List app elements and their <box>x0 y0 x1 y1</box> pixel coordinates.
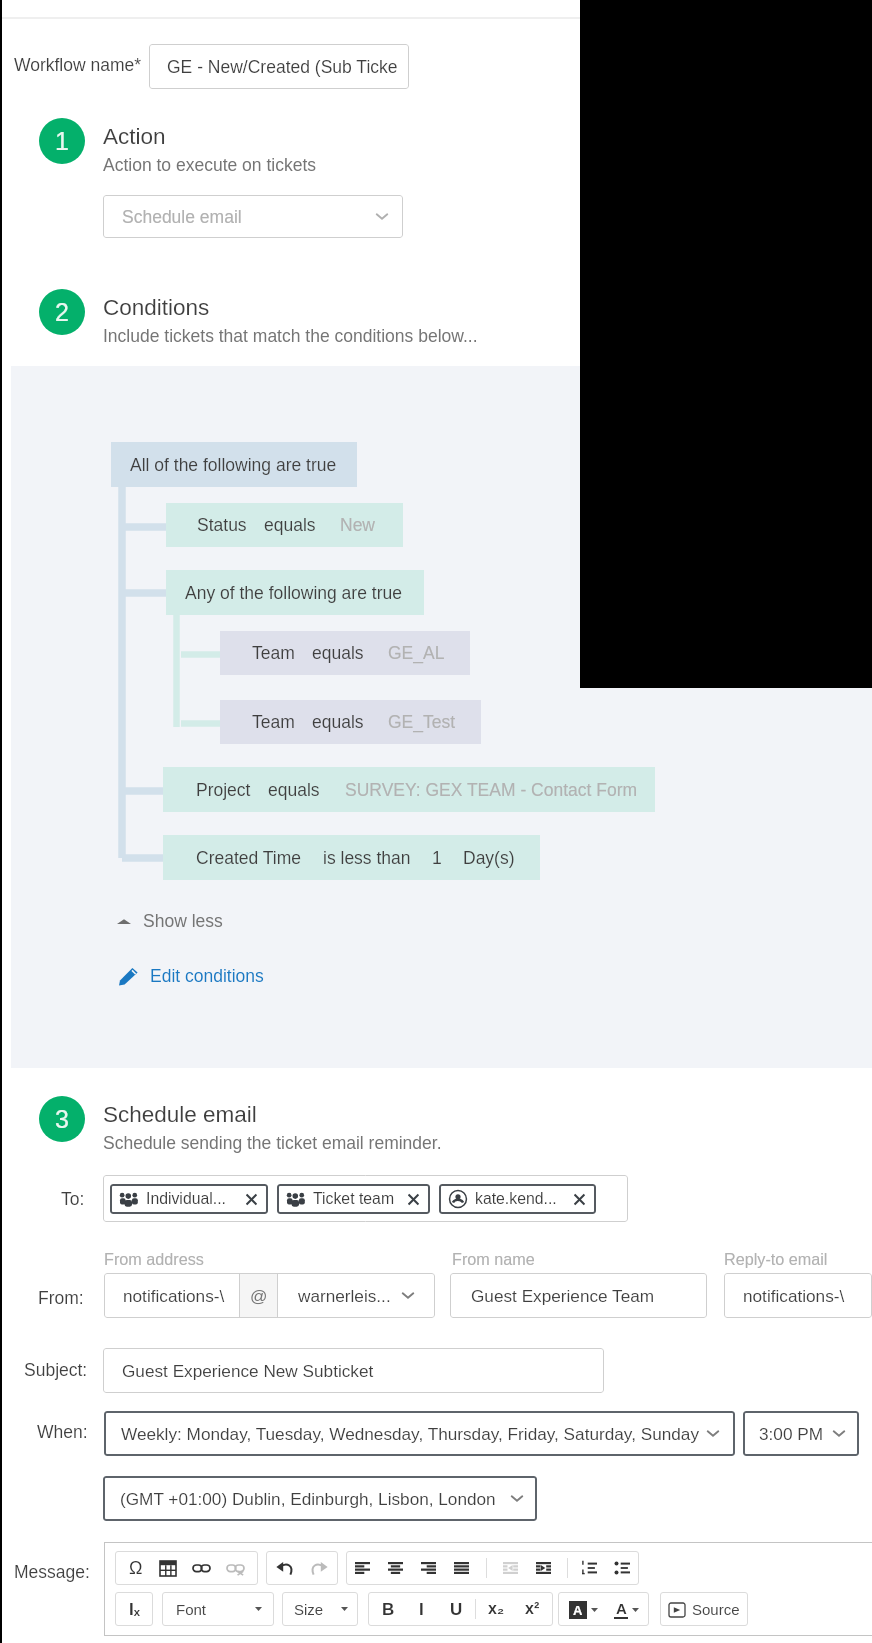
staticText: kate.kend... <box>475 1190 557 1208</box>
staticText: equals <box>312 643 364 663</box>
staticText: Ω <box>129 1558 143 1578</box>
staticText: 2 <box>55 298 69 326</box>
staticText: Size <box>294 1601 324 1618</box>
button[interactable] <box>266 1551 338 1585</box>
button[interactable]: Guest Experience Team <box>450 1273 707 1318</box>
staticText: When: <box>37 1422 88 1442</box>
button[interactable] <box>346 1551 639 1585</box>
button[interactable]: Remove <box>407 1193 420 1206</box>
staticText: GE_AL <box>388 643 445 663</box>
staticText: Action <box>103 124 166 149</box>
button[interactable]: Ω <box>115 1551 258 1585</box>
staticText: Schedule email <box>103 1102 257 1127</box>
staticText: Schedule sending the ticket email remind… <box>103 1133 442 1153</box>
button[interactable]: Any of the following are true <box>166 570 424 615</box>
staticText: Edit conditions <box>150 966 264 986</box>
staticText: U <box>450 1600 463 1619</box>
staticText: (GMT +01:00) Dublin, Edinburgh, Lisbon, … <box>120 1489 496 1508</box>
button[interactable]: Show less <box>117 911 223 931</box>
staticText: Weekly: Monday, Tuesday, Wednesday, Thur… <box>121 1424 699 1443</box>
staticText: x₂ <box>488 1600 505 1618</box>
staticText: Message: <box>14 1562 90 1582</box>
staticText: is less than <box>323 848 411 868</box>
staticText: notifications-\ <box>743 1286 845 1305</box>
button[interactable]: B <box>368 1592 553 1626</box>
staticText: Project <box>196 780 251 800</box>
button[interactable]: Source <box>660 1592 748 1626</box>
staticText: A <box>573 1603 583 1618</box>
button[interactable]: Individual... <box>103 1175 628 1222</box>
button[interactable]: Font <box>162 1592 274 1626</box>
staticText: SURVEY: GEX TEAM - Contact Form <box>345 780 638 800</box>
staticText: Ticket team <box>313 1190 395 1208</box>
staticText: warnerleis... <box>298 1286 391 1305</box>
staticText: To: <box>61 1189 85 1209</box>
staticText: Show less <box>143 911 223 931</box>
other: Edit <box>118 966 138 986</box>
button[interactable]: A <box>558 1592 649 1626</box>
button[interactable]: (GMT +01:00) Dublin, Edinburgh, Lisbon, … <box>103 1476 537 1521</box>
button[interactable]: kate.kend... <box>439 1184 596 1214</box>
staticText: 3 <box>55 1105 69 1133</box>
button[interactable]: Status <box>166 503 403 547</box>
staticText: x² <box>525 1600 540 1618</box>
staticText: @ <box>250 1286 268 1305</box>
button[interactable]: Size <box>282 1592 358 1626</box>
button[interactable]: 1 <box>39 118 85 164</box>
staticText: 1 <box>432 848 442 868</box>
button[interactable]: Individual... <box>110 1184 268 1214</box>
staticText: notifications-\ <box>123 1286 225 1305</box>
staticText: Subject: <box>24 1360 88 1380</box>
staticText: equals <box>264 515 316 535</box>
staticText: Iₓ <box>129 1600 140 1619</box>
staticText: Action to execute on tickets <box>103 155 317 175</box>
staticText: GE - New/Created (Sub Ticke <box>167 57 398 77</box>
staticText: From: <box>38 1288 84 1308</box>
staticText: All of the following are true <box>130 455 337 475</box>
staticText: Status <box>197 515 247 535</box>
staticText: Created Time <box>196 848 302 868</box>
staticText: New <box>340 515 376 535</box>
button[interactable]: Project <box>163 767 655 812</box>
staticText: Individual... <box>146 1190 226 1208</box>
button[interactable]: Weekly: Monday, Tuesday, Wednesday, Thur… <box>104 1411 735 1456</box>
button[interactable]: notifications-\ <box>104 1273 435 1318</box>
staticText: Source <box>692 1601 740 1618</box>
staticText: Team <box>252 643 295 663</box>
staticText: Workflow name* <box>14 55 142 75</box>
button[interactable]: 2 <box>39 289 85 335</box>
staticText: equals <box>312 712 364 732</box>
button[interactable]: Team <box>220 700 481 744</box>
staticText: A <box>616 1600 627 1617</box>
button[interactable]: All of the following are true <box>111 442 357 487</box>
staticText: Schedule email <box>122 207 242 227</box>
button[interactable]: Ticket team <box>277 1184 430 1214</box>
button[interactable]: notifications-\ <box>724 1273 872 1318</box>
staticText: 1 <box>55 127 69 155</box>
button[interactable]: 3 <box>39 1096 85 1142</box>
button[interactable]: 3:00 PM <box>743 1411 859 1456</box>
button[interactable]: Iₓ <box>115 1592 153 1626</box>
button[interactable]: Remove <box>573 1193 586 1206</box>
staticText: 3:00 PM <box>759 1424 824 1443</box>
staticText: B <box>382 1600 395 1619</box>
staticText: Reply-to email <box>724 1250 828 1268</box>
button[interactable]: Created Time <box>163 835 540 880</box>
staticText: Conditions <box>103 295 210 320</box>
staticText: Team <box>252 712 295 732</box>
staticText: From address <box>104 1250 204 1268</box>
button[interactable]: GE - New/Created (Sub Ticke <box>149 44 409 89</box>
staticText: equals <box>268 780 320 800</box>
button[interactable]: Schedule email <box>103 195 403 238</box>
button[interactable]: Team <box>220 631 470 675</box>
staticText: Include tickets that match the condition… <box>103 326 478 346</box>
staticText: Guest Experience New Subticket <box>122 1361 374 1380</box>
button[interactable]: Edit <box>118 966 264 986</box>
staticText: Font <box>176 1601 207 1618</box>
button[interactable]: Remove <box>245 1193 258 1206</box>
staticText: Guest Experience Team <box>471 1286 655 1305</box>
button[interactable]: Guest Experience New Subticket <box>103 1348 604 1393</box>
staticText: GE_Test <box>388 712 456 732</box>
staticText: Day(s) <box>463 848 515 868</box>
staticText: From name <box>452 1250 535 1268</box>
